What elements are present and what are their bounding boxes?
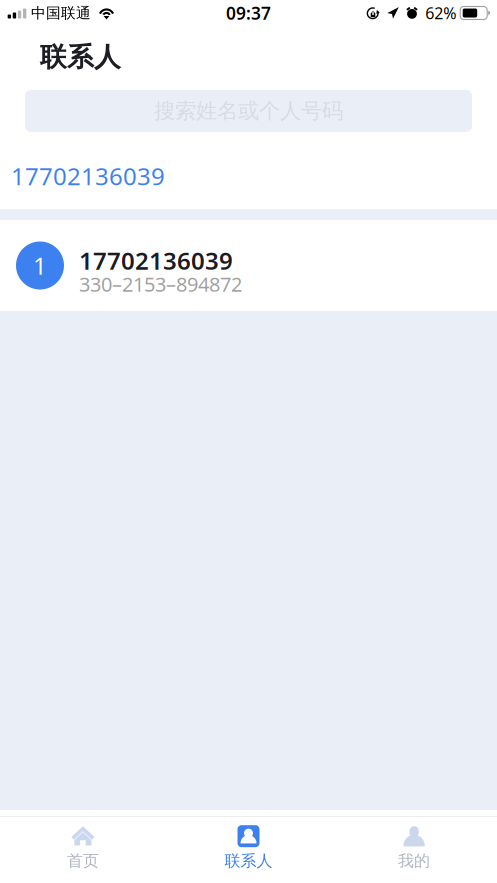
button[interactable]: 联系人 [166,817,331,879]
staticText: 联系人 [224,851,272,871]
staticText: 17702136039 [79,245,233,276]
staticText: 中国联通 [31,4,91,22]
staticText: 62% [425,2,456,24]
button[interactable]: 首页 [0,817,166,879]
staticText: 330–2153–894872 [79,271,242,297]
staticText: 09:37 [226,1,271,24]
staticText: 1 [33,250,47,281]
button[interactable]: 17702136039 [0,132,165,209]
staticText: 搜索姓名或个人号码 [154,98,343,124]
staticText: 我的 [398,851,430,871]
button[interactable]: 1 [0,220,497,311]
button[interactable]: 我的 [331,817,497,879]
button[interactable]: 搜索姓名或个人号码 [25,90,472,132]
staticText: 17702136039 [11,160,165,192]
staticText: 首页 [67,851,99,871]
staticText: 联系人 [40,41,121,73]
